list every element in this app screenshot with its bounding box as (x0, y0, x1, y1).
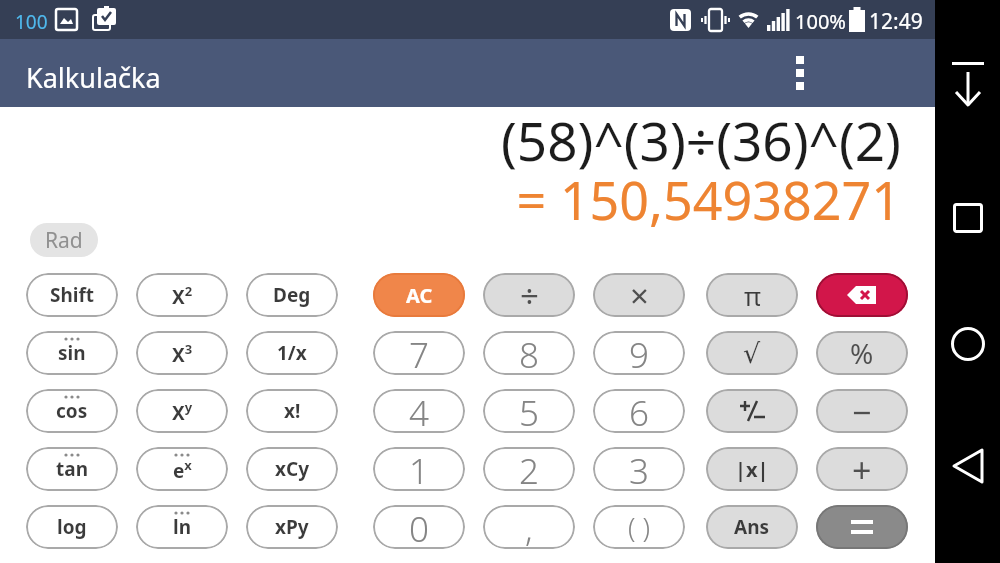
button[interactable]: Rad (30, 223, 98, 257)
button[interactable]: sin (26, 331, 118, 375)
staticText: sin (58, 340, 86, 366)
button[interactable]: cos (26, 389, 118, 433)
button[interactable]: 9 (593, 331, 685, 375)
button[interactable]: Ans (706, 505, 798, 549)
button[interactable]: X3 (136, 331, 228, 375)
button[interactable] (935, 437, 1000, 495)
staticText: 6 (629, 389, 649, 433)
staticText: 12:49 (869, 7, 923, 36)
staticText: AC (406, 282, 433, 309)
button[interactable]: Shift (26, 273, 118, 317)
button[interactable]: π (706, 273, 798, 317)
button[interactable] (935, 315, 1000, 373)
button[interactable]: Xy (136, 389, 228, 433)
staticText: (58)^(3)÷(36)^(2) (0, 104, 901, 176)
staticText: tan (56, 456, 88, 482)
button[interactable]: xPy (246, 505, 338, 549)
staticText: 4 (409, 389, 429, 433)
staticText: 100 (15, 9, 48, 35)
staticText: √ (743, 338, 761, 369)
button[interactable]: log (26, 505, 118, 549)
staticText: 2 (519, 447, 539, 491)
button[interactable]: AC (373, 273, 465, 317)
button[interactable]: 4 (373, 389, 465, 433)
staticText: × (630, 273, 649, 317)
staticText: 1/x (277, 340, 307, 366)
button[interactable]: X2 (136, 273, 228, 317)
button[interactable] (816, 273, 908, 317)
button[interactable]: 7 (373, 331, 465, 375)
button[interactable]: 0 (373, 505, 465, 549)
staticText: ln (173, 514, 192, 540)
button[interactable]: 2 (483, 447, 575, 491)
button[interactable]: xCy (246, 447, 338, 491)
staticText: + (852, 447, 872, 491)
button[interactable]: × (593, 273, 685, 317)
staticText: 0 (409, 505, 429, 549)
staticText: xCy (275, 456, 310, 482)
button[interactable]: x! (246, 389, 338, 433)
staticText: Ans (734, 514, 770, 540)
staticText: 3 (629, 447, 649, 491)
staticText: Shift (50, 282, 95, 308)
staticText: − (852, 389, 872, 433)
staticText: ÷ (520, 273, 539, 317)
button[interactable]: ÷ (483, 273, 575, 317)
staticText: log (57, 514, 87, 540)
button[interactable]: 1 (373, 447, 465, 491)
staticText: Xy (172, 398, 193, 425)
staticText: 100% (795, 8, 846, 35)
staticText: Deg (273, 282, 311, 308)
button[interactable] (706, 389, 798, 433)
button[interactable] (816, 505, 908, 549)
staticText: 7 (409, 331, 429, 375)
staticText: x! (284, 398, 301, 424)
staticText: 9 (629, 331, 649, 375)
staticText: , (525, 505, 533, 549)
button[interactable]: 5 (483, 389, 575, 433)
button[interactable]: , (483, 505, 575, 549)
staticText: 1 (409, 447, 429, 491)
button[interactable]: 1/x (246, 331, 338, 375)
button[interactable]: ln (136, 505, 228, 549)
button[interactable] (780, 39, 820, 107)
staticText: |x| (735, 456, 769, 483)
button[interactable]: ( ) (593, 505, 685, 549)
button[interactable]: ex (136, 447, 228, 491)
staticText: ( ) (628, 509, 650, 546)
staticText: Rad (45, 226, 83, 255)
button[interactable]: 3 (593, 447, 685, 491)
button[interactable]: tan (26, 447, 118, 491)
staticText: cos (56, 398, 88, 424)
button[interactable]: % (816, 331, 908, 375)
button[interactable] (935, 55, 1000, 115)
button[interactable]: 6 (593, 389, 685, 433)
button[interactable]: Deg (246, 273, 338, 317)
button[interactable] (935, 190, 1000, 246)
staticText: xPy (275, 514, 309, 540)
button[interactable]: − (816, 389, 908, 433)
button[interactable]: √ (706, 331, 798, 375)
staticText: X3 (172, 340, 193, 367)
staticText: X2 (172, 282, 193, 309)
staticText: ex (173, 456, 192, 483)
staticText: = 150,54938271 (0, 164, 901, 235)
button[interactable]: |x| (706, 447, 798, 491)
staticText: Kalkulačka (26, 59, 161, 96)
button[interactable]: 8 (483, 331, 575, 375)
staticText: 5 (519, 389, 539, 433)
staticText: 8 (519, 331, 539, 375)
button[interactable]: + (816, 447, 908, 491)
staticText: π (744, 278, 761, 313)
staticText: % (850, 334, 874, 372)
